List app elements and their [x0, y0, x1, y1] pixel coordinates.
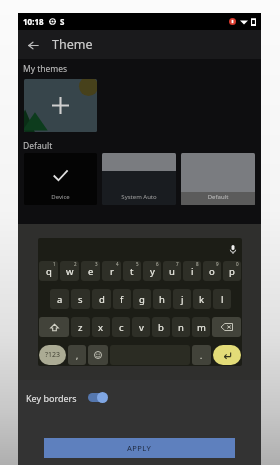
staticText: .: [200, 350, 203, 361]
staticText: n: [178, 321, 184, 334]
staticText: APPLY: [127, 443, 152, 453]
staticText: My themes: [23, 63, 68, 75]
staticText: o: [209, 265, 215, 278]
button[interactable]: z: [71, 317, 90, 337]
button[interactable]: s: [71, 289, 90, 309]
button[interactable]: .: [192, 345, 211, 365]
button[interactable]: k: [193, 289, 211, 309]
staticText: b: [158, 321, 164, 334]
staticText: r: [110, 265, 114, 278]
staticText: S: [60, 16, 65, 27]
button[interactable]: y: [143, 261, 161, 281]
staticText: t: [130, 265, 134, 278]
staticText: 9: [216, 261, 219, 267]
staticText: l: [221, 293, 224, 306]
button[interactable]: v: [132, 317, 150, 337]
staticText: 6: [156, 261, 159, 267]
staticText: Key borders: [26, 392, 77, 404]
button[interactable]: e: [81, 261, 100, 281]
button[interactable]: o: [203, 261, 221, 281]
staticText: Default: [23, 140, 53, 152]
button[interactable]: h: [153, 289, 171, 309]
staticText: 8: [196, 261, 199, 267]
staticText: h: [159, 293, 165, 306]
staticText: 10:18: [23, 16, 44, 27]
staticText: 1: [53, 261, 56, 267]
staticText: e: [88, 265, 94, 278]
button[interactable]: x: [92, 317, 110, 337]
staticText: m: [197, 321, 206, 334]
staticText: Default: [181, 193, 255, 201]
staticText: 3: [95, 261, 98, 267]
staticText: s: [78, 293, 83, 306]
button[interactable]: l: [213, 289, 231, 309]
button[interactable]: d: [92, 289, 111, 309]
button[interactable]: a: [50, 289, 69, 309]
staticText: 0: [236, 261, 239, 267]
button[interactable]: f: [113, 289, 131, 309]
button[interactable]: Add theme: [24, 79, 97, 132]
button[interactable]: j: [173, 289, 191, 309]
button[interactable]: Backspace: [212, 317, 241, 337]
button[interactable]: r: [102, 261, 121, 281]
button[interactable]: APPLY: [44, 438, 235, 458]
staticText: g: [139, 293, 145, 306]
staticText: a: [57, 293, 63, 306]
button[interactable]: n: [172, 317, 190, 337]
button[interactable]: System Auto: [102, 153, 176, 205]
staticText: u: [169, 265, 175, 278]
staticText: c: [119, 321, 124, 334]
staticText: j: [181, 293, 184, 306]
button[interactable]: c: [112, 317, 130, 337]
staticText: q: [46, 265, 52, 278]
staticText: 5: [136, 261, 139, 267]
staticText: d: [99, 293, 105, 306]
button[interactable]: Enter: [213, 345, 241, 365]
staticText: 2: [74, 261, 77, 267]
button[interactable]: Device: [24, 153, 97, 205]
staticText: 7: [176, 261, 179, 267]
staticText: f: [120, 293, 124, 306]
staticText: Device: [24, 193, 97, 201]
staticText: ?123: [45, 350, 61, 360]
staticText: k: [199, 293, 205, 306]
staticText: ,: [76, 350, 79, 361]
button[interactable]: Back: [22, 34, 44, 56]
button[interactable]: Shift: [39, 317, 69, 337]
button[interactable]: u: [163, 261, 181, 281]
button[interactable]: Key borders: [26, 380, 253, 415]
button[interactable]: m: [192, 317, 210, 337]
staticText: x: [98, 321, 104, 334]
button[interactable]: ?123: [39, 345, 66, 365]
button[interactable]: q: [39, 261, 58, 281]
staticText: System Auto: [102, 193, 176, 201]
button[interactable]: ,: [68, 345, 86, 365]
button[interactable]: Emoji: [88, 345, 108, 365]
staticText: v: [139, 321, 144, 334]
staticText: w: [66, 265, 74, 278]
button[interactable]: g: [133, 289, 151, 309]
staticText: 4: [116, 261, 119, 267]
staticText: i: [191, 265, 194, 278]
button[interactable]: w: [60, 261, 79, 281]
button[interactable]: p: [223, 261, 241, 281]
button[interactable]: b: [152, 317, 170, 337]
staticText: z: [78, 321, 83, 334]
button[interactable]: Default: [181, 153, 255, 205]
button[interactable]: t: [123, 261, 141, 281]
staticText: p: [229, 265, 235, 278]
staticText: Theme: [52, 36, 93, 53]
staticText: y: [150, 265, 155, 278]
button[interactable]: i: [183, 261, 201, 281]
